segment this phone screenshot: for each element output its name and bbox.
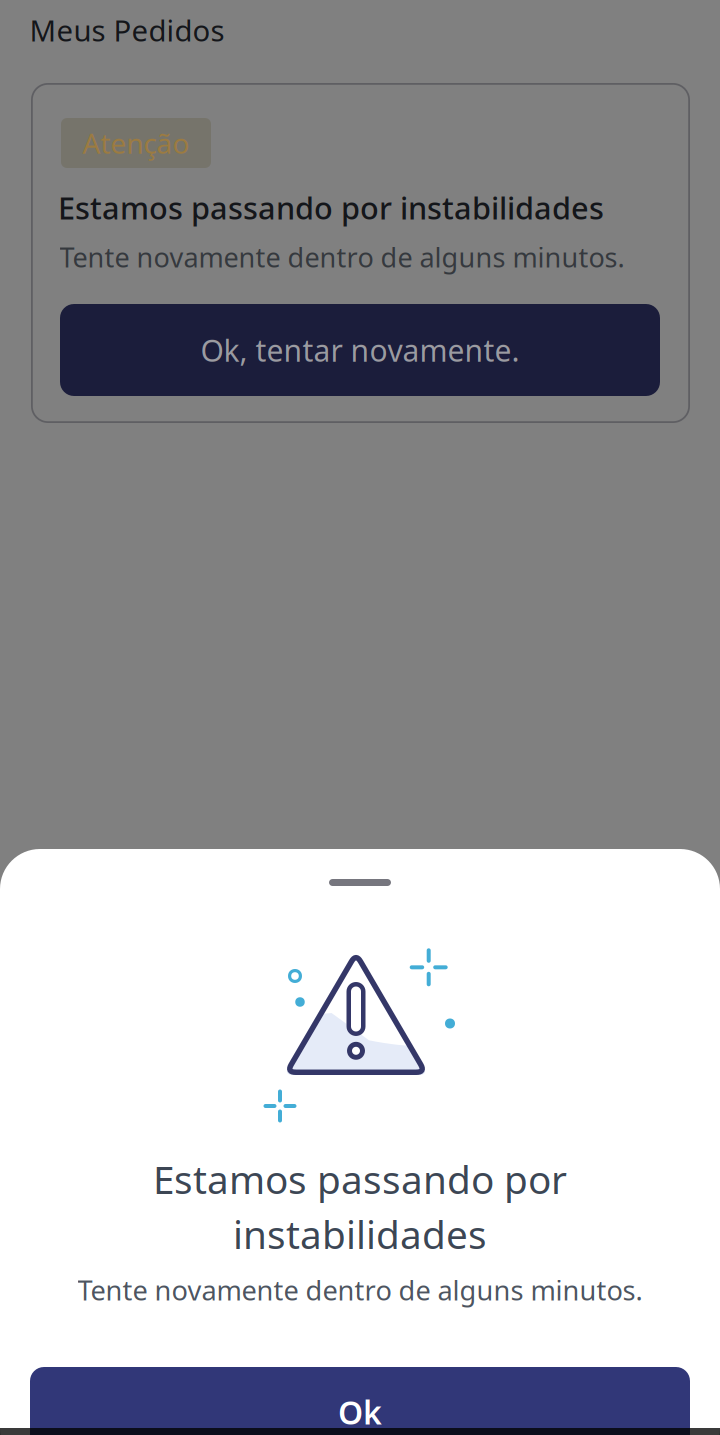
staticText: Ok, tentar novamente. xyxy=(200,330,519,370)
button[interactable]: Ok, tentar novamente. xyxy=(60,304,660,396)
staticText: Atenção xyxy=(82,124,189,162)
staticText: instabilidades xyxy=(233,1208,487,1260)
button[interactable]: Ok xyxy=(30,1367,690,1435)
staticText: Meus Pedidos xyxy=(29,10,224,49)
staticText: Tente novamente dentro de alguns minutos… xyxy=(77,1271,642,1308)
staticText: Ok xyxy=(338,1391,382,1433)
staticText: Estamos passando por xyxy=(153,1153,567,1205)
staticText: Estamos passando por instabilidades xyxy=(58,187,604,228)
staticText: Tente novamente dentro de alguns minutos… xyxy=(59,239,624,275)
